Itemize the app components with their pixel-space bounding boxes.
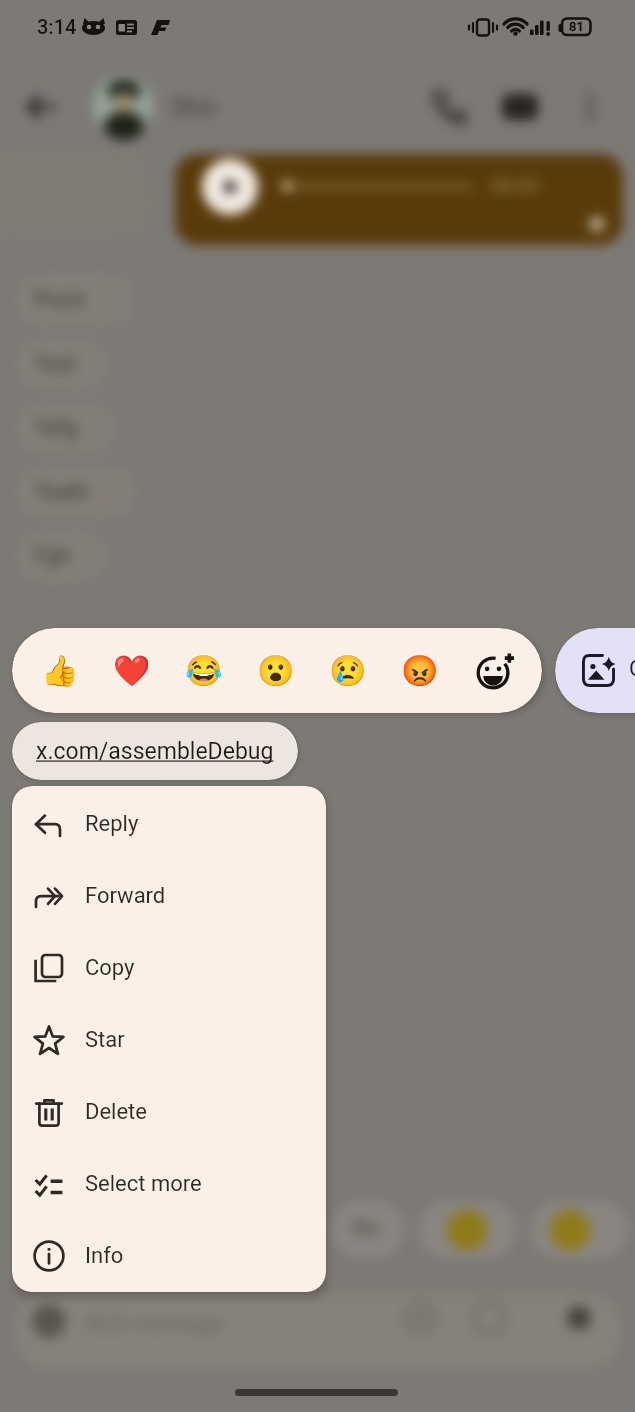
staticText: Create <box>629 656 635 682</box>
button[interactable]: Select more <box>12 1148 326 1220</box>
staticText: Forward <box>85 883 166 909</box>
staticText: 81 <box>569 19 584 34</box>
staticText: Copy <box>85 955 135 981</box>
staticText: 3:14 <box>37 15 77 38</box>
staticText: Teath <box>34 479 90 505</box>
staticText: Test <box>34 351 77 377</box>
staticText: Delete <box>85 1099 147 1125</box>
staticText: Select more <box>85 1171 202 1197</box>
button[interactable]: Star <box>12 1004 326 1076</box>
staticText: Reply <box>85 811 139 837</box>
staticText: 😂 <box>185 653 223 688</box>
staticText: 😡 <box>401 653 439 688</box>
button[interactable]: 😮 <box>248 642 304 698</box>
staticText: 😢 <box>329 653 367 688</box>
staticText: Star <box>85 1027 125 1053</box>
button[interactable]: Forward <box>12 860 326 932</box>
staticText: ❤️ <box>113 653 151 688</box>
staticText: 😮 <box>257 653 295 688</box>
button[interactable]: 😂 <box>176 642 232 698</box>
staticText: Shiv <box>171 93 218 122</box>
staticText: Tefg <box>34 415 78 441</box>
staticText: Fgh <box>34 543 71 569</box>
button[interactable]: Reply <box>12 788 326 860</box>
staticText: 00:03 <box>491 174 539 196</box>
button[interactable]: 😡 <box>392 642 448 698</box>
button[interactable]: 👍 <box>32 642 88 698</box>
staticText: Point <box>34 287 85 313</box>
button[interactable]: Create image <box>555 628 635 713</box>
button[interactable]: Info <box>12 1220 326 1292</box>
staticText: 👍 <box>41 653 79 688</box>
button[interactable]: Copy <box>12 932 326 1004</box>
button[interactable]: More reactions <box>467 643 523 699</box>
button[interactable]: 😢 <box>320 642 376 698</box>
staticText: No <box>352 1215 381 1241</box>
button[interactable]: ❤️ <box>104 642 160 698</box>
button[interactable]: x.com/assembleDebug <box>12 722 298 780</box>
staticText: Info <box>85 1243 124 1269</box>
button[interactable]: Delete <box>12 1076 326 1148</box>
staticText: x.com/assembleDebug <box>36 738 274 765</box>
